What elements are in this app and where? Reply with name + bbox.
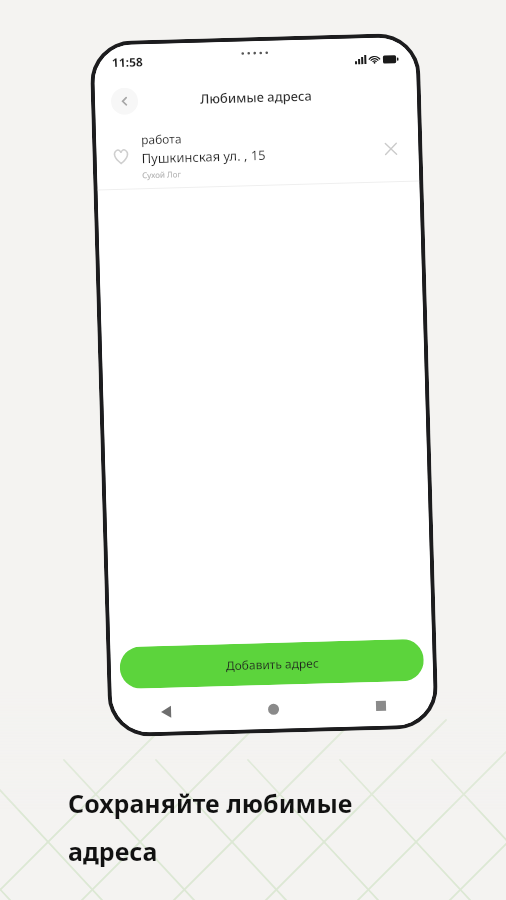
staticText: Сохраняйте любимые: [68, 786, 353, 820]
button[interactable]: работа: [96, 115, 419, 190]
staticText: Добавить адрес: [226, 655, 319, 673]
staticText: работа: [141, 130, 182, 147]
button[interactable]: Последние приложения: [327, 690, 434, 721]
staticText: Сухой Лог: [142, 168, 181, 180]
staticText: Любимые адреса: [200, 87, 312, 108]
button[interactable]: Назад: [112, 696, 220, 727]
staticText: 11:58: [112, 53, 143, 70]
button[interactable]: Добавить адрес: [119, 639, 424, 689]
button[interactable]: Домой: [220, 693, 327, 724]
button[interactable]: Назад: [111, 87, 138, 115]
button[interactable]: Удалить: [376, 134, 405, 163]
staticText: Пушкинская ул. , 15: [141, 146, 267, 167]
staticText: адреса: [68, 834, 158, 868]
